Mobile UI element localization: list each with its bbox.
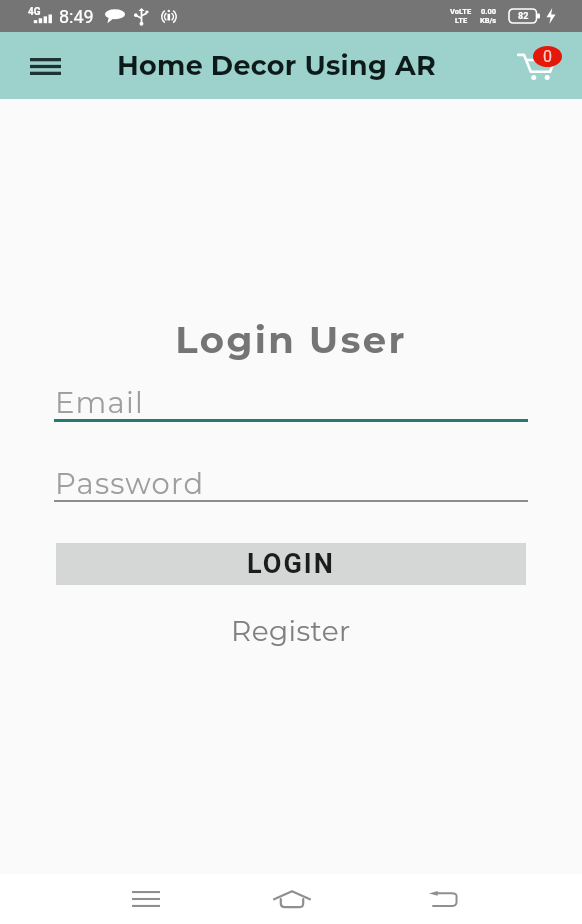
button[interactable]: Register [0,613,582,649]
staticText: Home Decor Using AR [117,49,437,82]
button[interactable]: LOGIN [56,543,526,585]
staticText: Email [55,385,144,420]
staticText: LTE [455,16,468,25]
staticText: 8:49 [59,6,94,27]
staticText: 4G [28,6,41,18]
button[interactable]: Open navigation menu [24,44,67,88]
staticText: 0 [543,47,552,66]
staticText: Password [55,466,205,501]
button[interactable]: Shopping cart [514,44,556,86]
staticText: KB/s [480,16,497,25]
staticText: 82 [518,11,529,22]
button[interactable]: Recent apps [118,879,174,919]
staticText: 0.00 [481,7,497,16]
staticText: VoLTE [450,7,472,16]
staticText: Login User [0,317,582,362]
button[interactable]: Home [263,879,321,919]
staticText: LOGIN [247,548,335,580]
button[interactable]: Back [415,879,471,919]
staticText: Register [231,614,351,648]
